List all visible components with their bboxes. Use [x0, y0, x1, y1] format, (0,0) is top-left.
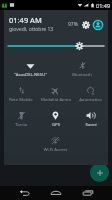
staticText: Automatico [79, 97, 102, 103]
button[interactable]: Automatico [73, 83, 108, 108]
staticText: Modalità Aereo [41, 97, 71, 103]
staticText: Rete Mobile [9, 97, 33, 103]
button[interactable]: Back [18, 186, 32, 200]
staticText: 01:49 AM [9, 15, 42, 25]
staticText: Suoni [85, 122, 97, 128]
button[interactable]: Wi-Fi Access Point [38, 133, 73, 158]
button[interactable]: Home [49, 186, 63, 200]
staticText: GPS [52, 122, 60, 128]
button[interactable]: Suoni [73, 108, 108, 133]
staticText: Wi-Fi Access Point [38, 147, 73, 153]
staticText: 97% [68, 21, 78, 28]
staticText: Bluetooth [72, 72, 92, 78]
button[interactable]: Torcia [4, 108, 38, 133]
button[interactable]: Bluetooth [56, 58, 108, 83]
staticText: Torcia [15, 122, 27, 128]
button[interactable]: Recent apps [81, 186, 95, 200]
button[interactable]: Brightness [8, 38, 104, 54]
button[interactable]: GPS [38, 108, 73, 133]
button[interactable]: "AsusDSL-N55U" [4, 58, 56, 83]
button[interactable]: Modalità Aereo [38, 83, 73, 108]
staticText: "AsusDSL-N55U" [14, 72, 47, 78]
button[interactable]: Settings [80, 19, 91, 30]
staticText: 01:49 [96, 2, 111, 9]
staticText: giovedì, ottobre 13 [9, 26, 54, 33]
button[interactable]: User profile [92, 19, 103, 30]
button[interactable]: Rete Mobile [4, 83, 38, 108]
button[interactable]: Add [90, 163, 109, 182]
